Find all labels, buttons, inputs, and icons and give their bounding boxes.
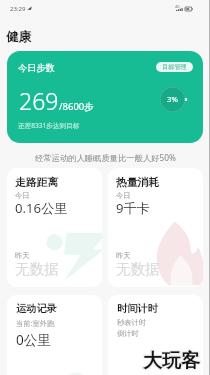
staticText: 昨天 <box>15 251 30 260</box>
staticText: 23:29 <box>10 5 26 13</box>
staticText: 健康 <box>6 29 31 45</box>
staticText: 大玩客 <box>143 348 200 372</box>
staticText: 还差8331步达到目标 <box>18 121 80 130</box>
button[interactable]: 走路距离 <box>7 168 102 287</box>
staticText: 时间计时 <box>117 302 158 315</box>
button[interactable]: 运动记录 <box>7 295 102 375</box>
staticText: 0公里 <box>16 330 51 349</box>
staticText: 今日 <box>116 191 131 200</box>
staticText: /8600步 <box>59 100 94 113</box>
staticText: 今日 <box>15 191 30 200</box>
button[interactable]: 热量消耗 <box>108 168 203 287</box>
button[interactable]: 今日步数 <box>7 51 203 143</box>
staticText: 秒表计时 <box>117 318 147 327</box>
staticText: 4G <box>175 4 180 9</box>
staticText: 运动记录 <box>16 302 57 315</box>
button[interactable]: 目标管理 <box>156 62 193 72</box>
staticText: 目标管理 <box>162 63 187 71</box>
staticText: 大玩客 <box>142 350 199 374</box>
staticText: 昨天 <box>116 251 131 260</box>
staticText: 大玩客 <box>142 348 199 372</box>
staticText: 今日步数 <box>18 62 55 74</box>
staticText: 9千卡 <box>116 199 150 217</box>
staticText: 倒计时 <box>117 329 139 338</box>
staticText: 3% <box>167 94 178 105</box>
staticText: 大玩客 <box>143 350 200 374</box>
staticText: 无数据 <box>15 260 59 278</box>
staticText: 大玩客 <box>142 349 199 373</box>
staticText: 经常运动的人睡眠质量比一般人好50% <box>35 152 176 163</box>
staticText: 大玩客 <box>143 349 200 373</box>
staticText: 当前:室外跑 <box>16 318 55 328</box>
staticText: 热量消耗 <box>116 176 160 190</box>
staticText: 269 <box>19 85 59 116</box>
staticText: 无数据 <box>116 260 160 278</box>
staticText: 大玩客 <box>144 350 201 374</box>
staticText: 走路距离 <box>15 176 59 190</box>
button[interactable]: 时间计时 <box>108 295 203 375</box>
staticText: 大玩客 <box>144 348 201 372</box>
staticText: 大玩客 <box>144 349 201 373</box>
staticText: 0.16公里 <box>15 199 68 217</box>
